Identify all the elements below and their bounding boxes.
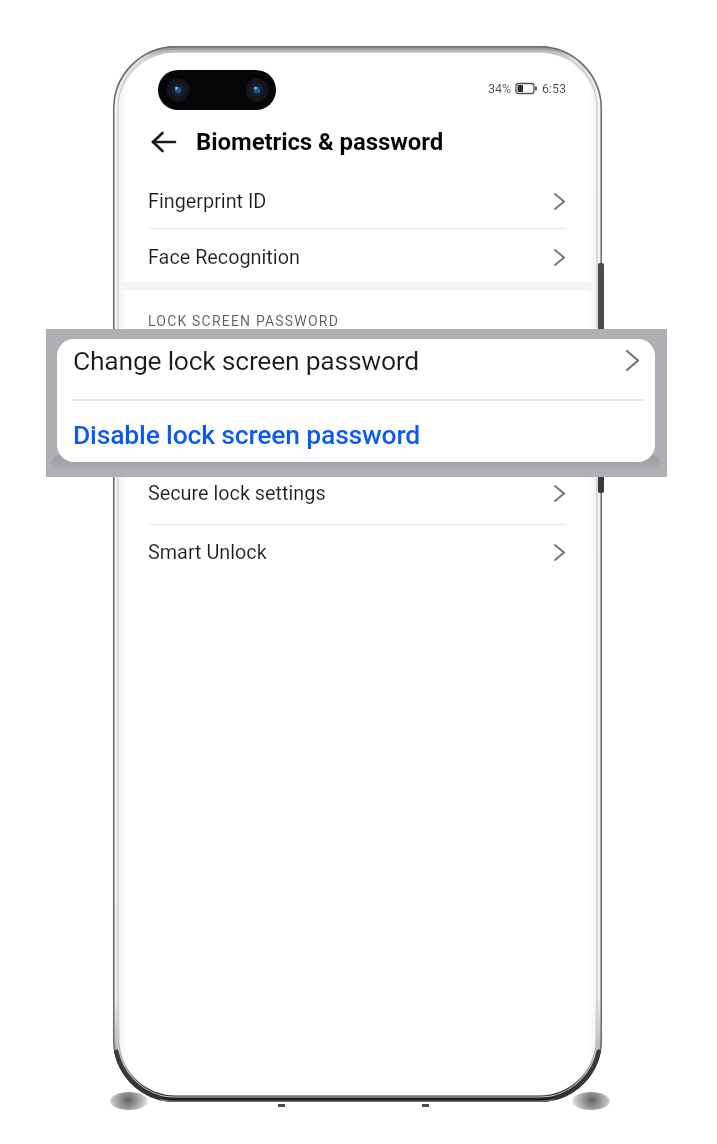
staticText: Disable lock screen password	[73, 419, 421, 450]
staticText: Smart Unlock	[148, 541, 267, 564]
button[interactable]: Change lock screen password	[57, 339, 655, 382]
button[interactable]: Disable lock screen password	[57, 411, 655, 458]
staticText: 6:53	[542, 81, 567, 96]
button[interactable]: Face Recognition	[123, 229, 592, 285]
staticText: 34%	[488, 81, 512, 96]
button[interactable]: Fingerprint ID	[123, 173, 592, 229]
staticText: Biometrics & password	[196, 128, 444, 156]
staticText: Face Recognition	[148, 246, 300, 269]
button[interactable]: Secure lock settings	[123, 465, 592, 521]
staticText: LOCK SCREEN PASSWORD	[148, 313, 340, 329]
staticText: Fingerprint ID	[148, 190, 267, 213]
button[interactable]: Smart Unlock	[123, 524, 592, 580]
staticText: Change lock screen password	[73, 345, 420, 376]
button[interactable]	[141, 120, 185, 164]
staticText: Secure lock settings	[148, 482, 326, 505]
